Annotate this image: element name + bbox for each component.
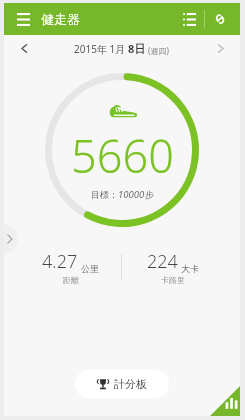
button[interactable]: Previous panel: [4, 224, 18, 254]
staticText: 2015年 1月: [74, 42, 128, 56]
staticText: 計分板: [114, 377, 147, 391]
button[interactable]: Next day: [210, 38, 230, 58]
staticText: 距離: [63, 275, 79, 285]
staticText: 目標：: [91, 189, 118, 200]
staticText: 卡路里: [161, 275, 185, 285]
button[interactable]: List: [177, 7, 201, 31]
staticText: 224: [147, 249, 178, 274]
button[interactable]: Menu: [12, 8, 34, 30]
staticText: 8日: [128, 41, 146, 56]
button[interactable]: Previous day: [14, 38, 34, 58]
button[interactable]: 224: [122, 249, 224, 285]
staticText: 公里: [81, 263, 99, 274]
button[interactable]: Link: [208, 7, 232, 31]
staticText: (週四): [146, 45, 169, 56]
staticText: 健走器: [41, 11, 80, 27]
button[interactable]: 計分板: [75, 370, 169, 398]
staticText: 步: [145, 189, 154, 200]
button[interactable]: 4.27: [20, 249, 121, 285]
staticText: 5660: [71, 125, 174, 186]
staticText: 4.27: [42, 249, 78, 274]
staticText: 10000: [118, 188, 145, 201]
button[interactable]: Statistics: [210, 386, 240, 416]
staticText: 大卡: [181, 263, 199, 274]
